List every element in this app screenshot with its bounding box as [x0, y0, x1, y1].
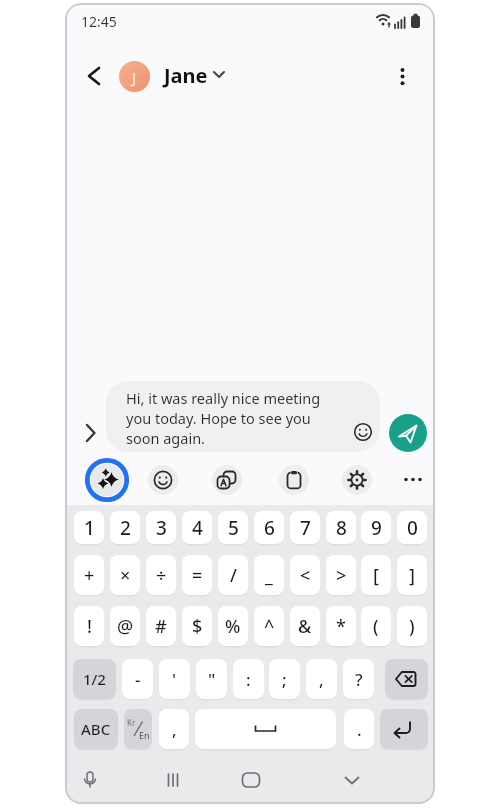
staticText: ": [208, 668, 216, 691]
staticText: ': [172, 668, 177, 691]
button[interactable]: ': [159, 659, 190, 699]
staticText: ;: [282, 668, 287, 691]
button[interactable]: :: [233, 659, 264, 699]
button[interactable]: =: [182, 555, 212, 595]
staticText: 3: [156, 515, 167, 541]
button[interactable]: +: [74, 555, 104, 595]
button[interactable]: ?: [343, 659, 374, 699]
staticText: -: [135, 668, 141, 691]
staticText: @: [117, 614, 134, 639]
button[interactable]: &: [290, 606, 320, 646]
staticText: 12:45: [81, 12, 117, 31]
button[interactable]: /: [218, 555, 248, 595]
button[interactable]: 2: [110, 511, 140, 544]
button[interactable]: 3: [146, 511, 176, 544]
button[interactable]: [148, 465, 178, 495]
button[interactable]: -: [122, 659, 153, 699]
staticText: 9: [371, 515, 382, 541]
button[interactable]: [124, 709, 152, 749]
button[interactable]: @: [110, 606, 140, 646]
staticText: ÷: [156, 563, 167, 588]
staticText: 7: [300, 515, 311, 541]
staticText: %: [225, 614, 241, 639]
staticText: #: [155, 614, 167, 639]
staticText: ?: [355, 668, 363, 691]
button[interactable]: [: [361, 555, 391, 595]
staticText: 1/2: [83, 669, 106, 689]
staticText: 2: [120, 515, 131, 541]
button[interactable]: [385, 659, 428, 699]
button[interactable]: (: [361, 606, 391, 646]
button[interactable]: 5: [218, 511, 248, 544]
button[interactable]: ,: [159, 709, 189, 749]
button[interactable]: [279, 465, 309, 495]
button[interactable]: !: [74, 606, 104, 646]
staticText: ]: [409, 563, 415, 588]
button[interactable]: 0: [397, 511, 427, 544]
button[interactable]: ]: [397, 555, 427, 595]
button[interactable]: ×: [110, 555, 140, 595]
staticText: [: [373, 563, 379, 588]
button[interactable]: $: [182, 606, 212, 646]
button[interactable]: [391, 64, 415, 90]
staticText: ,: [172, 718, 177, 741]
button[interactable]: Jane: [162, 61, 227, 91]
staticText: &: [298, 614, 312, 639]
button[interactable]: [81, 422, 101, 444]
button[interactable]: <: [290, 555, 320, 595]
button[interactable]: Hi, it was really nice meeting you today…: [106, 381, 380, 452]
button[interactable]: *: [326, 606, 356, 646]
button[interactable]: [399, 465, 427, 493]
staticText: >: [336, 563, 347, 588]
button[interactable]: 1/2: [73, 659, 116, 699]
button[interactable]: [212, 465, 242, 495]
button[interactable]: [162, 768, 186, 792]
staticText: ,: [319, 668, 324, 691]
button[interactable]: 6: [254, 511, 284, 544]
button[interactable]: J: [119, 61, 150, 92]
button[interactable]: 1: [74, 511, 104, 544]
button[interactable]: >: [326, 555, 356, 595]
button[interactable]: #: [146, 606, 176, 646]
button[interactable]: ": [196, 659, 227, 699]
staticText: 4: [192, 515, 203, 541]
staticText: +: [84, 563, 95, 588]
button[interactable]: ;: [269, 659, 300, 699]
button[interactable]: %: [218, 606, 248, 646]
button[interactable]: [380, 709, 428, 749]
button[interactable]: 9: [361, 511, 391, 544]
button[interactable]: ABC: [74, 709, 118, 749]
button[interactable]: [85, 458, 129, 502]
button[interactable]: .: [344, 709, 374, 749]
button[interactable]: [239, 768, 263, 792]
staticText: <: [300, 563, 311, 588]
staticText: ×: [120, 563, 131, 588]
button[interactable]: 7: [290, 511, 320, 544]
button[interactable]: [340, 768, 364, 792]
button[interactable]: ÷: [146, 555, 176, 595]
button[interactable]: 8: [326, 511, 356, 544]
staticText: :: [246, 668, 251, 691]
staticText: Kr: [127, 717, 136, 728]
staticText: Jane: [164, 62, 208, 89]
button[interactable]: 4: [182, 511, 212, 544]
staticText: .: [357, 718, 362, 741]
button[interactable]: ^: [254, 606, 284, 646]
staticText: ): [409, 614, 415, 639]
staticText: 6: [264, 515, 275, 541]
staticText: (: [373, 614, 379, 639]
staticText: !: [87, 614, 92, 639]
staticText: _: [265, 563, 273, 588]
button[interactable]: [389, 414, 427, 452]
staticText: =: [192, 563, 203, 588]
button[interactable]: _: [254, 555, 284, 595]
staticText: /: [230, 563, 237, 588]
button[interactable]: [78, 768, 102, 792]
button[interactable]: [342, 465, 372, 495]
button[interactable]: ): [397, 606, 427, 646]
staticText: 1: [84, 515, 95, 541]
button[interactable]: [195, 709, 336, 749]
staticText: 8: [336, 515, 347, 541]
button[interactable]: [82, 64, 106, 88]
button[interactable]: ,: [306, 659, 337, 699]
